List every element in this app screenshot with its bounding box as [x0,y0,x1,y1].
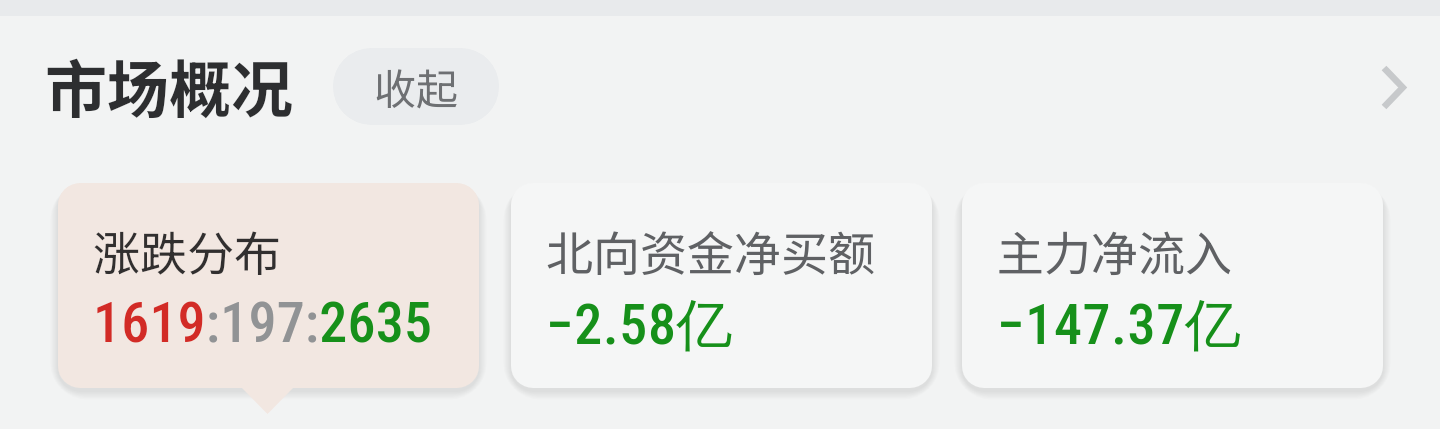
button[interactable]: 市场概况 [45,40,294,130]
staticText: 1619:197:2635 [93,290,433,356]
button[interactable]: 主力净流入 [962,183,1383,388]
button[interactable]: 收起 [333,48,499,125]
staticText: 市场概况 [45,40,294,130]
staticText: 涨跌分布 [93,216,281,284]
staticText: −147.37亿 [997,290,1242,361]
staticText: 北向资金净买额 [546,216,875,284]
button[interactable]: 北向资金净买额 [511,183,932,388]
button[interactable]: Open market overview [1361,54,1427,120]
staticText: 主力净流入 [997,216,1232,284]
staticText: 收起 [374,56,459,117]
staticText: −2.58亿 [546,290,734,361]
button[interactable]: 涨跌分布 [58,183,479,388]
